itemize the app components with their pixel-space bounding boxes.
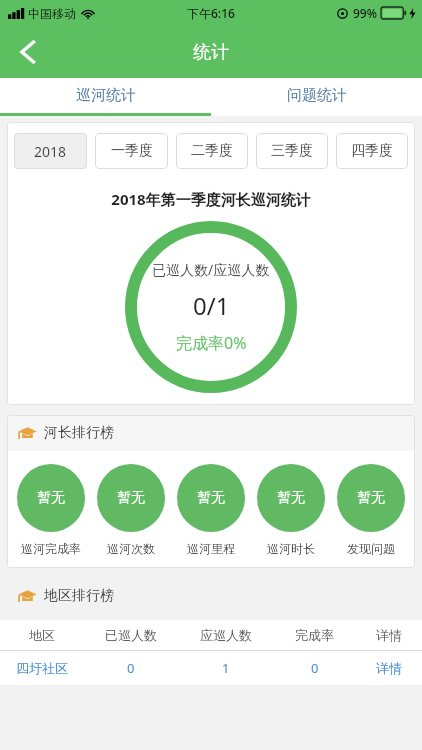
staticText: 统计 [193, 41, 229, 64]
staticText: 下午6:16 [187, 5, 235, 21]
staticText: 四季度 [351, 142, 393, 160]
staticText: 1 [222, 659, 230, 677]
staticText: 完成率0% [176, 332, 247, 354]
staticText: 详情 [376, 627, 402, 643]
button[interactable]: 暂无 [251, 464, 331, 556]
staticText: 暂无 [197, 489, 225, 507]
staticText: 巡河完成率 [21, 541, 81, 556]
button[interactable]: 二季度 [176, 133, 248, 169]
staticText: 河长排行榜 [44, 424, 114, 442]
button[interactable]: 一季度 [95, 133, 168, 169]
staticText: 0/1 [193, 289, 230, 322]
staticText: 2018年第一季度河长巡河统计 [7, 189, 415, 209]
staticText: 一季度 [111, 142, 153, 160]
staticText: 巡河里程 [187, 541, 235, 556]
staticText: 2018 [34, 142, 67, 161]
staticText: 发现问题 [347, 541, 395, 556]
button[interactable]: 暂无 [91, 464, 171, 556]
staticText: 三季度 [271, 142, 313, 160]
staticText: 四圩社区 [16, 660, 68, 676]
staticText: 暂无 [117, 489, 145, 507]
staticText: 问题统计 [287, 86, 347, 105]
staticText: 已巡人数/应巡人数 [152, 260, 270, 279]
button[interactable]: 暂无 [11, 464, 91, 556]
staticText: 应巡人数 [200, 627, 252, 643]
button[interactable]: 四圩社区 [0, 651, 422, 685]
button[interactable]: 巡河统计 [0, 78, 211, 113]
staticText: 0 [311, 659, 319, 677]
button[interactable]: 暂无 [331, 464, 411, 556]
staticText: 地区 [29, 627, 55, 643]
staticText: 二季度 [191, 142, 233, 160]
staticText: 暂无 [277, 489, 305, 507]
button[interactable]: Back [6, 30, 50, 74]
button[interactable]: 暂无 [171, 464, 251, 556]
staticText: 巡河统计 [76, 86, 136, 105]
staticText: 详情 [376, 660, 402, 676]
staticText: 暂无 [357, 489, 385, 507]
button[interactable]: 2018 [14, 133, 87, 169]
staticText: 99% [353, 5, 377, 21]
button[interactable]: 三季度 [256, 133, 328, 169]
staticText: 地区排行榜 [44, 587, 114, 605]
staticText: 巡河时长 [267, 541, 315, 556]
staticText: 完成率 [295, 627, 334, 643]
staticText: 中国移动 [28, 6, 76, 21]
button[interactable]: 问题统计 [211, 78, 422, 113]
staticText: 0 [127, 659, 135, 677]
staticText: 已巡人数 [105, 627, 157, 643]
button[interactable]: 四季度 [336, 133, 408, 169]
staticText: 暂无 [37, 489, 65, 507]
staticText: 巡河次数 [107, 541, 155, 556]
